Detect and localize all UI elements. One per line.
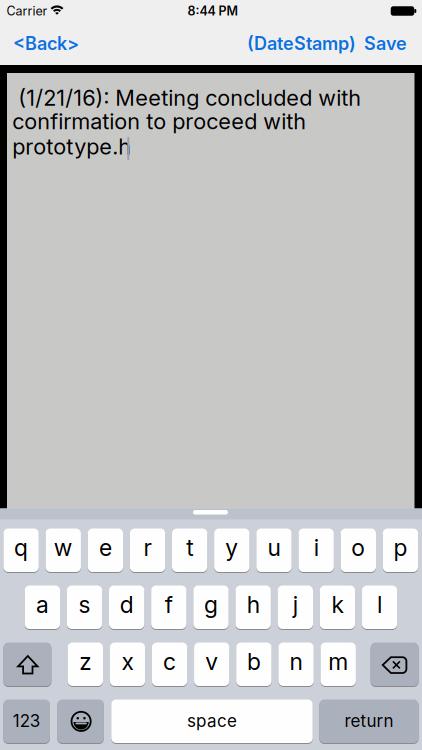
button[interactable]: (DateStamp) bbox=[196, 28, 356, 58]
staticText: 8:44 PM bbox=[187, 3, 238, 18]
staticText: f bbox=[165, 591, 173, 619]
button[interactable]: e bbox=[88, 528, 123, 572]
staticText: c bbox=[163, 648, 176, 676]
staticText: p bbox=[393, 534, 407, 562]
staticText: <Back> bbox=[13, 33, 79, 54]
button[interactable]: r bbox=[130, 528, 165, 572]
button[interactable]: l bbox=[362, 585, 397, 629]
staticText: t bbox=[186, 534, 193, 562]
staticText: (DateStamp) bbox=[247, 33, 356, 54]
button[interactable]: Delete bbox=[371, 642, 419, 686]
button[interactable]: t bbox=[172, 528, 207, 572]
staticText: 123 bbox=[13, 710, 41, 731]
button[interactable]: g bbox=[193, 585, 229, 629]
button[interactable]: 123 bbox=[3, 699, 50, 743]
button[interactable]: x bbox=[110, 642, 145, 686]
staticText: a bbox=[36, 591, 49, 619]
button[interactable]: z bbox=[68, 642, 103, 686]
staticText: q bbox=[14, 534, 28, 562]
staticText: b bbox=[247, 648, 261, 676]
button[interactable]: o bbox=[341, 528, 376, 572]
staticText: e bbox=[99, 534, 112, 562]
staticText: k bbox=[331, 591, 343, 619]
staticText: space bbox=[187, 710, 237, 731]
staticText: z bbox=[79, 648, 91, 676]
button[interactable]: m bbox=[320, 642, 356, 686]
staticText: confirmation to proceed with bbox=[12, 108, 306, 134]
button[interactable]: y bbox=[214, 528, 250, 572]
button[interactable]: q bbox=[3, 528, 39, 572]
staticText: Save bbox=[364, 33, 407, 54]
staticText: r bbox=[143, 534, 151, 562]
button[interactable]: i bbox=[298, 528, 334, 572]
button[interactable]: return bbox=[319, 699, 419, 743]
staticText: o bbox=[351, 534, 365, 562]
staticText: m bbox=[328, 648, 348, 676]
button[interactable]: d bbox=[109, 585, 144, 629]
button[interactable]: space bbox=[111, 699, 313, 743]
staticText: prototype.h bbox=[12, 133, 131, 160]
button[interactable]: k bbox=[320, 585, 355, 629]
staticText: w bbox=[54, 534, 73, 562]
button[interactable]: a bbox=[25, 585, 60, 629]
staticText: l bbox=[377, 591, 382, 619]
button[interactable]: v bbox=[194, 642, 229, 686]
staticText: return bbox=[344, 710, 393, 731]
button[interactable]: p bbox=[383, 528, 418, 572]
button[interactable]: f bbox=[151, 585, 187, 629]
button[interactable]: c bbox=[152, 642, 187, 686]
button[interactable]: Shift bbox=[3, 642, 51, 686]
button[interactable]: b bbox=[236, 642, 272, 686]
button[interactable]: s bbox=[67, 585, 102, 629]
staticText: v bbox=[205, 648, 218, 676]
button[interactable]: u bbox=[256, 528, 292, 572]
staticText: g bbox=[204, 591, 218, 619]
staticText: d bbox=[120, 591, 134, 619]
button[interactable]: Emoji bbox=[57, 699, 104, 743]
staticText: x bbox=[121, 648, 133, 676]
button[interactable]: j bbox=[278, 585, 313, 629]
staticText: n bbox=[290, 648, 303, 676]
button[interactable]: n bbox=[278, 642, 314, 686]
staticText: (1/21/16): Meeting concluded with bbox=[12, 84, 361, 111]
button[interactable]: Save bbox=[327, 28, 407, 58]
staticText: i bbox=[314, 534, 319, 562]
staticText: u bbox=[267, 534, 280, 562]
button[interactable]: w bbox=[45, 528, 81, 572]
button[interactable]: <Back> bbox=[13, 28, 123, 58]
staticText: j bbox=[293, 591, 298, 619]
staticText: h bbox=[247, 591, 260, 619]
staticText: s bbox=[78, 591, 90, 619]
staticText: y bbox=[225, 534, 238, 562]
button[interactable]: h bbox=[235, 585, 271, 629]
staticText: Carrier bbox=[6, 3, 47, 18]
